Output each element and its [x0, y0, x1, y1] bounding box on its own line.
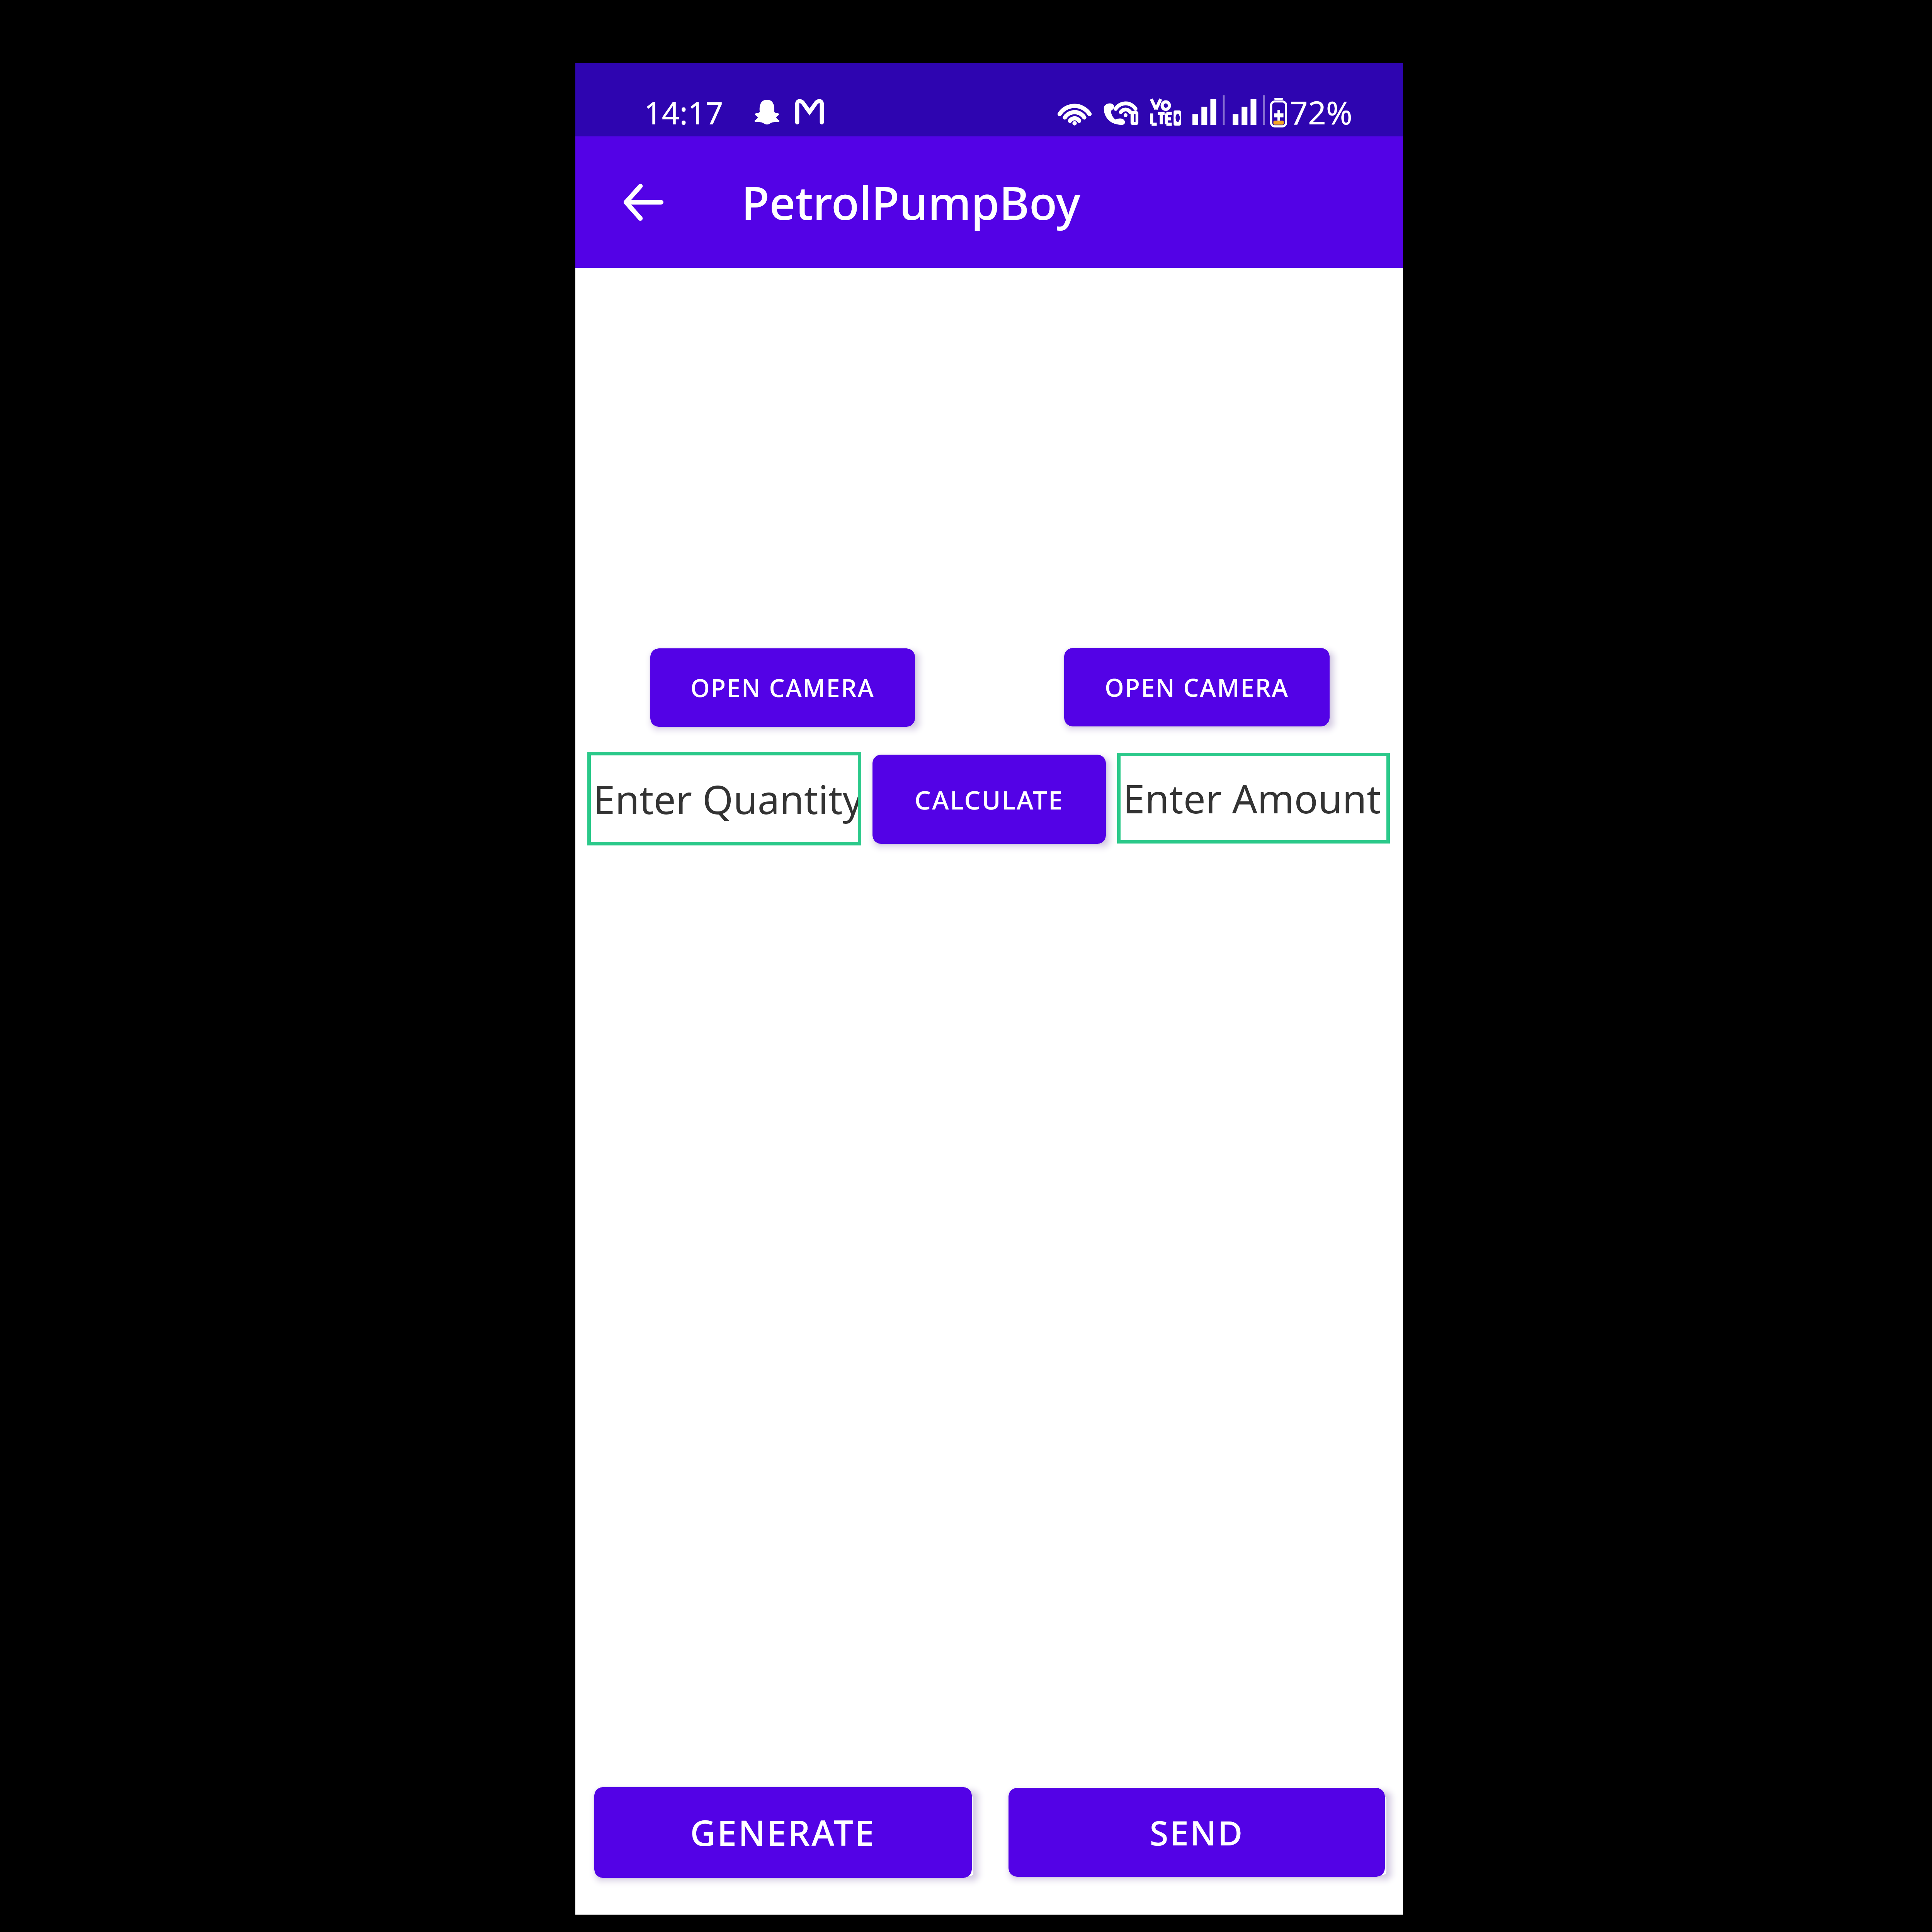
- button[interactable]: GENERATE: [594, 1787, 972, 1878]
- staticText: 72%: [1290, 90, 1352, 134]
- button[interactable]: Enter Quantity: [587, 752, 861, 845]
- button[interactable]: OPEN CAMERA: [1064, 648, 1330, 726]
- button[interactable]: CALCULATE: [872, 755, 1106, 844]
- staticText: 14:17: [644, 91, 723, 133]
- staticText: CALCULATE: [915, 782, 1064, 817]
- staticText: Enter Quantity: [593, 772, 861, 826]
- staticText: OPEN CAMERA: [1105, 671, 1289, 704]
- staticText: GENERATE: [690, 1809, 876, 1856]
- button[interactable]: SEND: [1009, 1788, 1385, 1877]
- staticText: OPEN CAMERA: [690, 671, 875, 704]
- staticText: PetrolPumpBoy: [742, 171, 1080, 233]
- button[interactable]: OPEN CAMERA: [650, 648, 915, 727]
- button[interactable]: Enter Amount: [1117, 753, 1390, 844]
- button[interactable]: Back: [616, 175, 670, 229]
- staticText: Enter Amount: [1123, 771, 1381, 825]
- staticText: SEND: [1150, 1810, 1244, 1855]
